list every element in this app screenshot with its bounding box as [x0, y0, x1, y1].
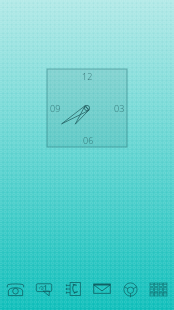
button[interactable]: Browser	[117, 277, 144, 301]
button[interactable]: Analog clock widget	[47, 69, 127, 147]
button[interactable]: Contacts	[59, 277, 86, 301]
button[interactable]: Apps	[145, 277, 172, 301]
staticText: 09	[50, 102, 61, 114]
button[interactable]: Phone	[2, 277, 29, 301]
button[interactable]: Email	[88, 277, 115, 301]
button[interactable]: Messages	[30, 277, 57, 301]
staticText: 12	[82, 70, 93, 82]
staticText: 03	[114, 102, 125, 114]
staticText: 06	[83, 134, 94, 146]
